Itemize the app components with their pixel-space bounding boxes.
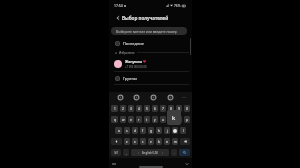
staticText: 3	[130, 107, 132, 111]
staticText: k	[172, 114, 176, 122]
button[interactable]: Группы	[109, 73, 192, 83]
staticText: w	[122, 118, 125, 122]
button[interactable]: r	[136, 116, 142, 123]
button[interactable]: f	[140, 127, 146, 134]
staticText: Последние	[123, 41, 144, 46]
staticText: q	[114, 118, 116, 122]
staticText: 0	[186, 107, 188, 111]
button[interactable]: tool	[112, 92, 128, 103]
staticText: 1	[114, 107, 116, 111]
staticText: 7	[162, 107, 164, 111]
staticText: Избранное	[119, 51, 135, 55]
button[interactable]: j	[164, 127, 170, 134]
button[interactable]: 4	[136, 105, 142, 112]
button[interactable]: Shift	[111, 138, 122, 145]
button[interactable]: y	[152, 116, 158, 123]
button[interactable]: tool	[128, 92, 145, 103]
staticText: p	[186, 118, 188, 122]
button[interactable]: 7	[160, 105, 166, 112]
staticText: e	[130, 118, 132, 122]
button[interactable]: i	[168, 116, 174, 123]
button[interactable]: h	[156, 127, 162, 134]
staticText: Выберите контакт или введите номер	[116, 29, 177, 33]
staticText: u	[162, 118, 164, 122]
button[interactable]: 6	[152, 105, 158, 112]
button[interactable]: Hide keyboard	[112, 162, 116, 166]
button[interactable]: 2	[120, 105, 126, 112]
staticText: r	[138, 118, 140, 122]
button[interactable]: b	[156, 138, 162, 145]
staticText: t	[146, 118, 148, 122]
button[interactable]: d	[132, 127, 138, 134]
staticText: b	[158, 140, 160, 144]
button[interactable]: ‹	[131, 149, 169, 156]
staticText: 6	[154, 107, 156, 111]
button[interactable]: u	[160, 116, 166, 123]
button[interactable]: tool	[162, 92, 179, 103]
button[interactable]: tool	[145, 92, 162, 103]
button[interactable]: Backspace	[180, 138, 190, 145]
button[interactable]: p	[184, 116, 190, 123]
staticText: n	[166, 140, 168, 144]
staticText: English (US)	[142, 151, 159, 155]
button[interactable]	[172, 127, 178, 134]
staticText: a	[118, 129, 120, 133]
staticText: Выбор получателей	[122, 15, 169, 21]
button[interactable]: n	[164, 138, 170, 145]
button[interactable]: Back	[114, 14, 122, 22]
staticText: 9	[178, 107, 180, 111]
button[interactable]: t	[144, 116, 150, 123]
staticText: 17:54	[114, 3, 123, 8]
button[interactable]: 3	[128, 105, 134, 112]
staticText: Жанулька	[125, 59, 142, 64]
button[interactable]: Close keyboard	[185, 162, 189, 166]
staticText: ‹	[138, 151, 139, 155]
button[interactable]: .	[171, 149, 177, 156]
button[interactable]: 5	[144, 105, 150, 112]
staticText: d	[134, 129, 136, 133]
staticText: .	[174, 151, 175, 155]
button[interactable]: s	[124, 127, 130, 134]
staticText: j	[167, 129, 168, 133]
staticText: x	[134, 140, 136, 144]
button[interactable]: 8	[168, 105, 174, 112]
button[interactable]: z	[124, 138, 130, 145]
button[interactable]: x	[132, 138, 138, 145]
staticText: s	[126, 129, 128, 133]
staticText: m	[174, 140, 177, 144]
staticText: ,	[126, 151, 127, 155]
staticText: 8	[170, 107, 172, 111]
button[interactable]: l	[180, 127, 186, 134]
staticText: 2	[122, 107, 124, 111]
button[interactable]: Выберите контакт или введите номер	[111, 27, 187, 35]
staticText: ⋯	[182, 95, 186, 100]
button[interactable]: Жанулька	[109, 57, 192, 70]
button[interactable]: Последние	[109, 38, 192, 48]
staticText: 76%	[174, 4, 181, 8]
button[interactable]: 9	[176, 105, 182, 112]
button[interactable]: 0	[184, 105, 190, 112]
button[interactable]: o	[176, 116, 182, 123]
button[interactable]: c	[140, 138, 146, 145]
button[interactable]: v	[148, 138, 154, 145]
button[interactable]: More	[179, 92, 189, 103]
button[interactable]: e	[128, 116, 134, 123]
staticText: z	[126, 140, 128, 144]
button[interactable]: q	[111, 116, 118, 123]
staticText: y	[154, 118, 156, 122]
button[interactable]: 1	[111, 105, 118, 112]
button[interactable]: g	[148, 127, 154, 134]
button[interactable]: !#1	[111, 149, 121, 156]
button[interactable]: a	[115, 127, 122, 134]
staticText: !#1	[114, 151, 119, 155]
staticText: v	[150, 140, 152, 144]
button[interactable]: m	[172, 138, 178, 145]
button[interactable]: Search	[179, 149, 190, 156]
button[interactable]: w	[120, 116, 126, 123]
button[interactable]: ,	[123, 149, 129, 156]
staticText: f	[142, 129, 144, 133]
staticText: l	[183, 129, 184, 133]
staticText: c	[142, 140, 144, 144]
staticText: g	[150, 129, 152, 133]
